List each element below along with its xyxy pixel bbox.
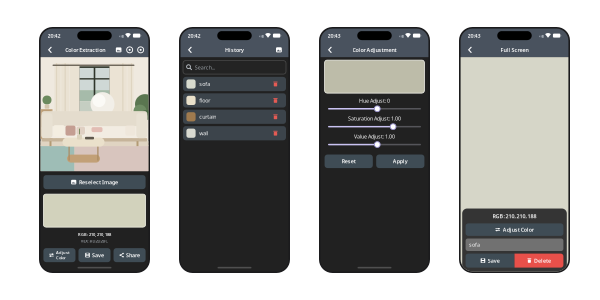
staticText: Search... [195,64,215,71]
staticText: 20:42 [48,32,61,39]
staticText: Apply [393,158,408,165]
button[interactable]: Saved images [273,44,284,55]
button[interactable]: History [126,45,133,54]
button[interactable]: Back [325,44,336,55]
staticText: Share [126,252,140,259]
button[interactable]: Save [78,248,111,262]
staticText: History [225,46,244,53]
staticText: Reset [342,158,356,165]
button[interactable]: Reset [325,154,373,168]
button[interactable]: Adjust Color [466,223,563,236]
staticText: wall [199,130,208,137]
staticText: Full Screen [500,46,528,53]
staticText: Delete [534,257,551,264]
staticText: RGB: 210, 210, 188 [492,213,536,220]
button[interactable]: sofa [183,77,286,91]
staticText: Save [92,252,104,259]
button[interactable]: curtain [183,110,286,124]
button[interactable]: floor [183,93,286,107]
staticText: Color Extraction [65,46,105,53]
staticText: RGB: 210, 210, 188 [78,232,111,237]
button[interactable]: Save [466,254,514,268]
staticText: sofa [469,241,480,248]
staticText: Save [488,257,500,264]
button[interactable]: Delete [514,254,563,268]
button[interactable]: Share [113,248,146,262]
staticText: HEX: #D2D2BC [80,238,108,244]
staticText: Value Adjust: 1.00 [354,133,395,140]
button[interactable]: Reselect Image [43,175,146,189]
staticText: 20:43 [328,32,341,39]
staticText: Saturation Adjust: 1.00 [348,115,401,122]
staticText: Adjust Color [56,250,70,260]
button[interactable]: Back [465,44,476,55]
button[interactable]: Back [45,44,56,55]
staticText: Color Adjustment [352,46,396,53]
staticText: sofa [199,80,210,88]
staticText: 20:43 [468,32,481,39]
staticText: curtain [199,113,216,120]
button[interactable]: Adjust Color [43,248,75,262]
button[interactable]: wall [183,126,286,140]
button[interactable]: Saved images [115,45,122,54]
staticText: Reselect Image [79,179,118,186]
staticText: Adjust Color [503,226,534,233]
button[interactable]: Back [185,44,196,55]
staticText: Hue Adjust: 0 [359,97,390,104]
button[interactable]: Info [137,45,144,54]
staticText: floor [199,97,210,104]
staticText: 20:42 [188,32,201,39]
button[interactable]: Apply [376,154,424,168]
